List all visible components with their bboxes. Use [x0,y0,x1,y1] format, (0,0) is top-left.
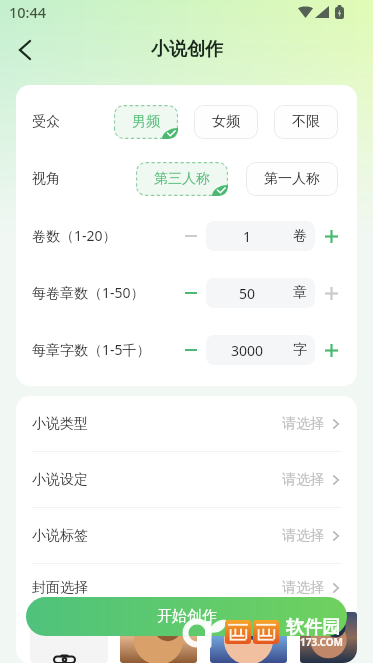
button[interactable]: Decrease [179,338,203,362]
staticText: CR173.COM [287,635,344,649]
staticText: 女频 [212,113,240,131]
button[interactable]: 3000 [206,335,315,365]
staticText: 小说创作 [151,38,223,61]
staticText: 1 [243,227,252,246]
staticText: 开始创作 [157,607,217,626]
button[interactable]: 女频 [194,105,258,139]
staticText: 第一人称 [264,170,320,188]
staticText: 请选择 [282,579,324,597]
staticText: 小说标签 [32,527,88,545]
staticText: 软件园 [286,616,340,639]
button[interactable]: Take photo [30,612,108,663]
button[interactable]: 第一人称 [246,162,338,196]
staticText: 小说设定 [32,471,88,489]
button[interactable]: 开始创作 [26,597,347,636]
staticText: 每章字数（1-5千） [32,340,151,359]
button[interactable]: 小说标签 [16,508,357,563]
staticText: 字 [293,341,307,359]
button[interactable]: 男频 [114,105,178,139]
staticText: 卷 [293,227,307,245]
staticText: 第三人称 [154,170,210,188]
staticText: 章 [293,284,307,302]
button[interactable]: 不限 [274,105,338,139]
button[interactable]: Decrease [179,281,203,305]
staticText: 请选择 [282,527,324,545]
button[interactable]: Increase [318,223,344,249]
button[interactable]: Cover option [210,612,287,663]
button[interactable]: 小说设定 [16,452,357,507]
staticText: 3000 [231,341,264,360]
staticText: 男频 [132,113,160,131]
button[interactable]: 1 [206,221,315,251]
staticText: 请选择 [282,471,324,489]
button[interactable]: 50 [206,278,315,308]
staticText: 不限 [292,113,320,131]
staticText: 每卷章数（1-50） [32,283,145,302]
staticText: 10:44 [9,2,47,22]
button[interactable]: Back [4,29,45,70]
button[interactable]: Increase [318,280,344,306]
staticText: 小说类型 [32,415,88,433]
staticText: 封面选择 [32,579,88,597]
button[interactable]: 封面选择 [16,564,357,612]
button[interactable]: Decrease [179,224,203,248]
staticText: 请选择 [282,415,324,433]
button[interactable]: 第三人称 [136,162,228,196]
staticText: 受众 [32,113,60,131]
staticText: 视角 [32,170,60,188]
button[interactable]: 小说类型 [16,396,357,451]
staticText: 50 [239,284,256,303]
button[interactable]: Cover option [120,612,197,663]
staticText: 卷数（1-20） [32,226,117,245]
button[interactable]: Increase [318,337,344,363]
button[interactable]: Cover option [300,612,357,663]
